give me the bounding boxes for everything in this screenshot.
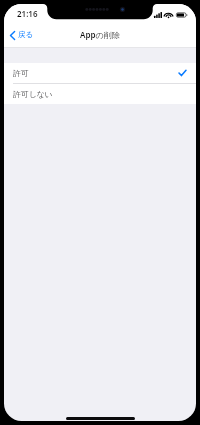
- staticText: 戻る: [18, 30, 34, 40]
- other: Back: [10, 31, 15, 40]
- staticText: 許可しない: [13, 89, 53, 99]
- staticText: 21:16: [17, 8, 38, 19]
- button[interactable]: Back: [4, 25, 40, 45]
- button[interactable]: 許可: [4, 63, 196, 83]
- button[interactable]: 許可しない: [4, 84, 196, 104]
- staticText: 許可: [13, 68, 29, 78]
- staticText: Appの削除: [80, 29, 120, 40]
